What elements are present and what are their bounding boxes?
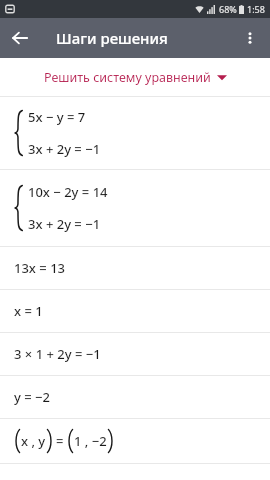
staticText: 10x − 2y = 14 [28, 183, 108, 201]
button[interactable]: 10x − 2y = 14 [0, 170, 270, 246]
staticText: 3 × 1 + 2y = −1 [14, 345, 101, 363]
staticText: x , y [21, 432, 46, 450]
button[interactable]: 13x = 13 [0, 247, 270, 289]
staticText: y = −2 [14, 388, 50, 406]
staticText: = [56, 432, 64, 450]
button[interactable]: y = −2 [0, 376, 270, 418]
button[interactable]: Back [0, 18, 40, 58]
button[interactable]: More options [230, 18, 270, 58]
staticText: 1:58 [247, 3, 265, 15]
staticText: Шаги решения [56, 28, 168, 48]
button[interactable]: 3 × 1 + 2y = −1 [0, 333, 270, 375]
staticText: 1 , −2 [74, 432, 107, 450]
staticText: 68% [219, 3, 237, 15]
staticText: 13x = 13 [14, 259, 65, 277]
button[interactable]: x = 1 [0, 290, 270, 332]
staticText: 3x + 2y = −1 [28, 140, 101, 158]
staticText: x = 1 [14, 302, 43, 320]
staticText: 3x + 2y = −1 [28, 215, 101, 233]
button[interactable]: x , y [0, 419, 270, 463]
staticText: Решить систему уравнений [44, 69, 211, 86]
staticText: 5x − y = 7 [28, 108, 86, 126]
button[interactable]: 5x − y = 7 [0, 97, 270, 169]
button[interactable]: Решить систему уравнений [0, 58, 270, 96]
